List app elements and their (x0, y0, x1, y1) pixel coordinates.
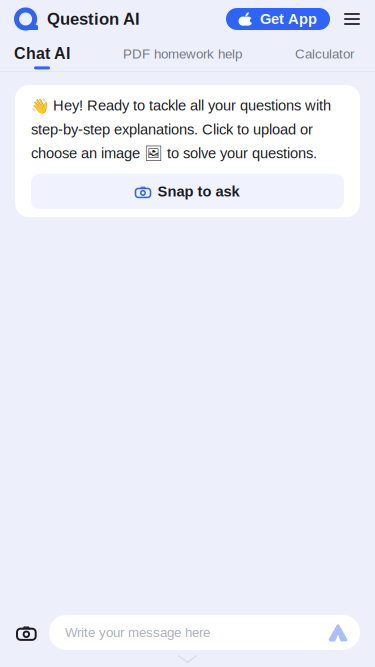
button[interactable]: Send (327, 622, 349, 642)
button[interactable]: Menu (330, 7, 360, 30)
staticText: Calculator (295, 47, 354, 61)
staticText: PDF homework help (123, 47, 242, 61)
staticText: 👋 Hey! Ready to tackle all your question… (31, 97, 331, 162)
button[interactable]: Question AI (14, 7, 140, 31)
button[interactable]: PDF homework help (114, 37, 251, 73)
staticText: Question AI (47, 10, 140, 28)
button[interactable]: Take photo (0, 625, 49, 640)
staticText: Snap to ask (157, 183, 239, 200)
button[interactable]: Chat AI (5, 37, 79, 69)
button[interactable]: Calculator (286, 37, 363, 73)
staticText: Get App (260, 11, 317, 27)
button[interactable]: Get App (226, 8, 330, 30)
button[interactable]: Snap to ask (31, 174, 344, 209)
staticText: Chat AI (14, 45, 70, 62)
staticText: Write your message here (65, 625, 210, 640)
